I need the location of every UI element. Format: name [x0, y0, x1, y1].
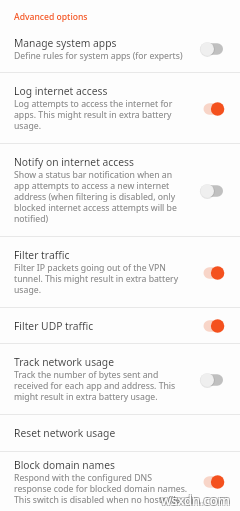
button[interactable]: Log internet access [0, 73, 240, 143]
button[interactable]: Reset network usage [0, 415, 240, 451]
staticText: Show a status bar notification when an a… [14, 169, 188, 225]
staticText: Advanced options [14, 11, 88, 23]
staticText: Track the number of bytes sent and recei… [14, 369, 188, 403]
button[interactable]: Switch off [188, 373, 228, 386]
staticText: Track network usage [14, 355, 115, 369]
button[interactable]: Switch off [188, 42, 228, 55]
staticText: wsxdn.com [160, 492, 229, 510]
staticText: wsxdn.com [161, 491, 230, 509]
staticText: Filter UDP traffic [14, 319, 94, 333]
button[interactable]: Switch on [188, 266, 228, 279]
button[interactable]: Track network usage [0, 344, 240, 414]
staticText: Block domain names [14, 458, 115, 472]
staticText: Filter IP packets going out of the VPN t… [14, 262, 188, 296]
button[interactable]: Notify on internet access [0, 144, 240, 236]
button[interactable]: Filter traffic [0, 237, 240, 307]
staticText: Log internet access [14, 84, 108, 98]
staticText: wsxdn.com [162, 490, 231, 508]
button[interactable]: Filter UDP traffic [0, 308, 240, 343]
staticText: Notify on internet access [14, 155, 134, 169]
staticText: Manage system apps [14, 36, 117, 50]
staticText: Filter traffic [14, 248, 70, 262]
staticText: Log attempts to access the internet for … [14, 98, 188, 132]
button[interactable]: Switch on [188, 102, 228, 115]
button[interactable]: Switch on [188, 319, 228, 332]
staticText: wsxdn.com [160, 490, 229, 508]
staticText: wsxdn.com [162, 492, 231, 510]
staticText: Reset network usage [14, 426, 116, 440]
button[interactable]: Manage system apps [0, 25, 240, 72]
button[interactable]: Switch on [188, 475, 228, 488]
button[interactable]: Switch off [188, 184, 228, 197]
staticText: Respond with the configured DNS response… [14, 472, 188, 506]
staticText: Define rules for system apps (for expert… [14, 50, 183, 62]
button[interactable]: Block domain names [0, 452, 240, 511]
